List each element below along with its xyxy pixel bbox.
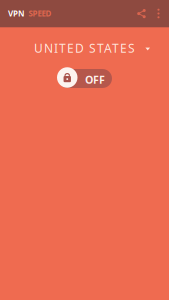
staticText: VPN [8,8,25,19]
button[interactable]: More options [150,0,167,27]
staticText: SPEED [28,8,51,19]
staticText: OFF [85,72,105,87]
button[interactable]: Share [133,0,150,27]
button[interactable]: UNITED STATES [0,37,169,59]
staticText: UNITED STATES [34,40,135,56]
button[interactable]: OFF [56,67,112,88]
